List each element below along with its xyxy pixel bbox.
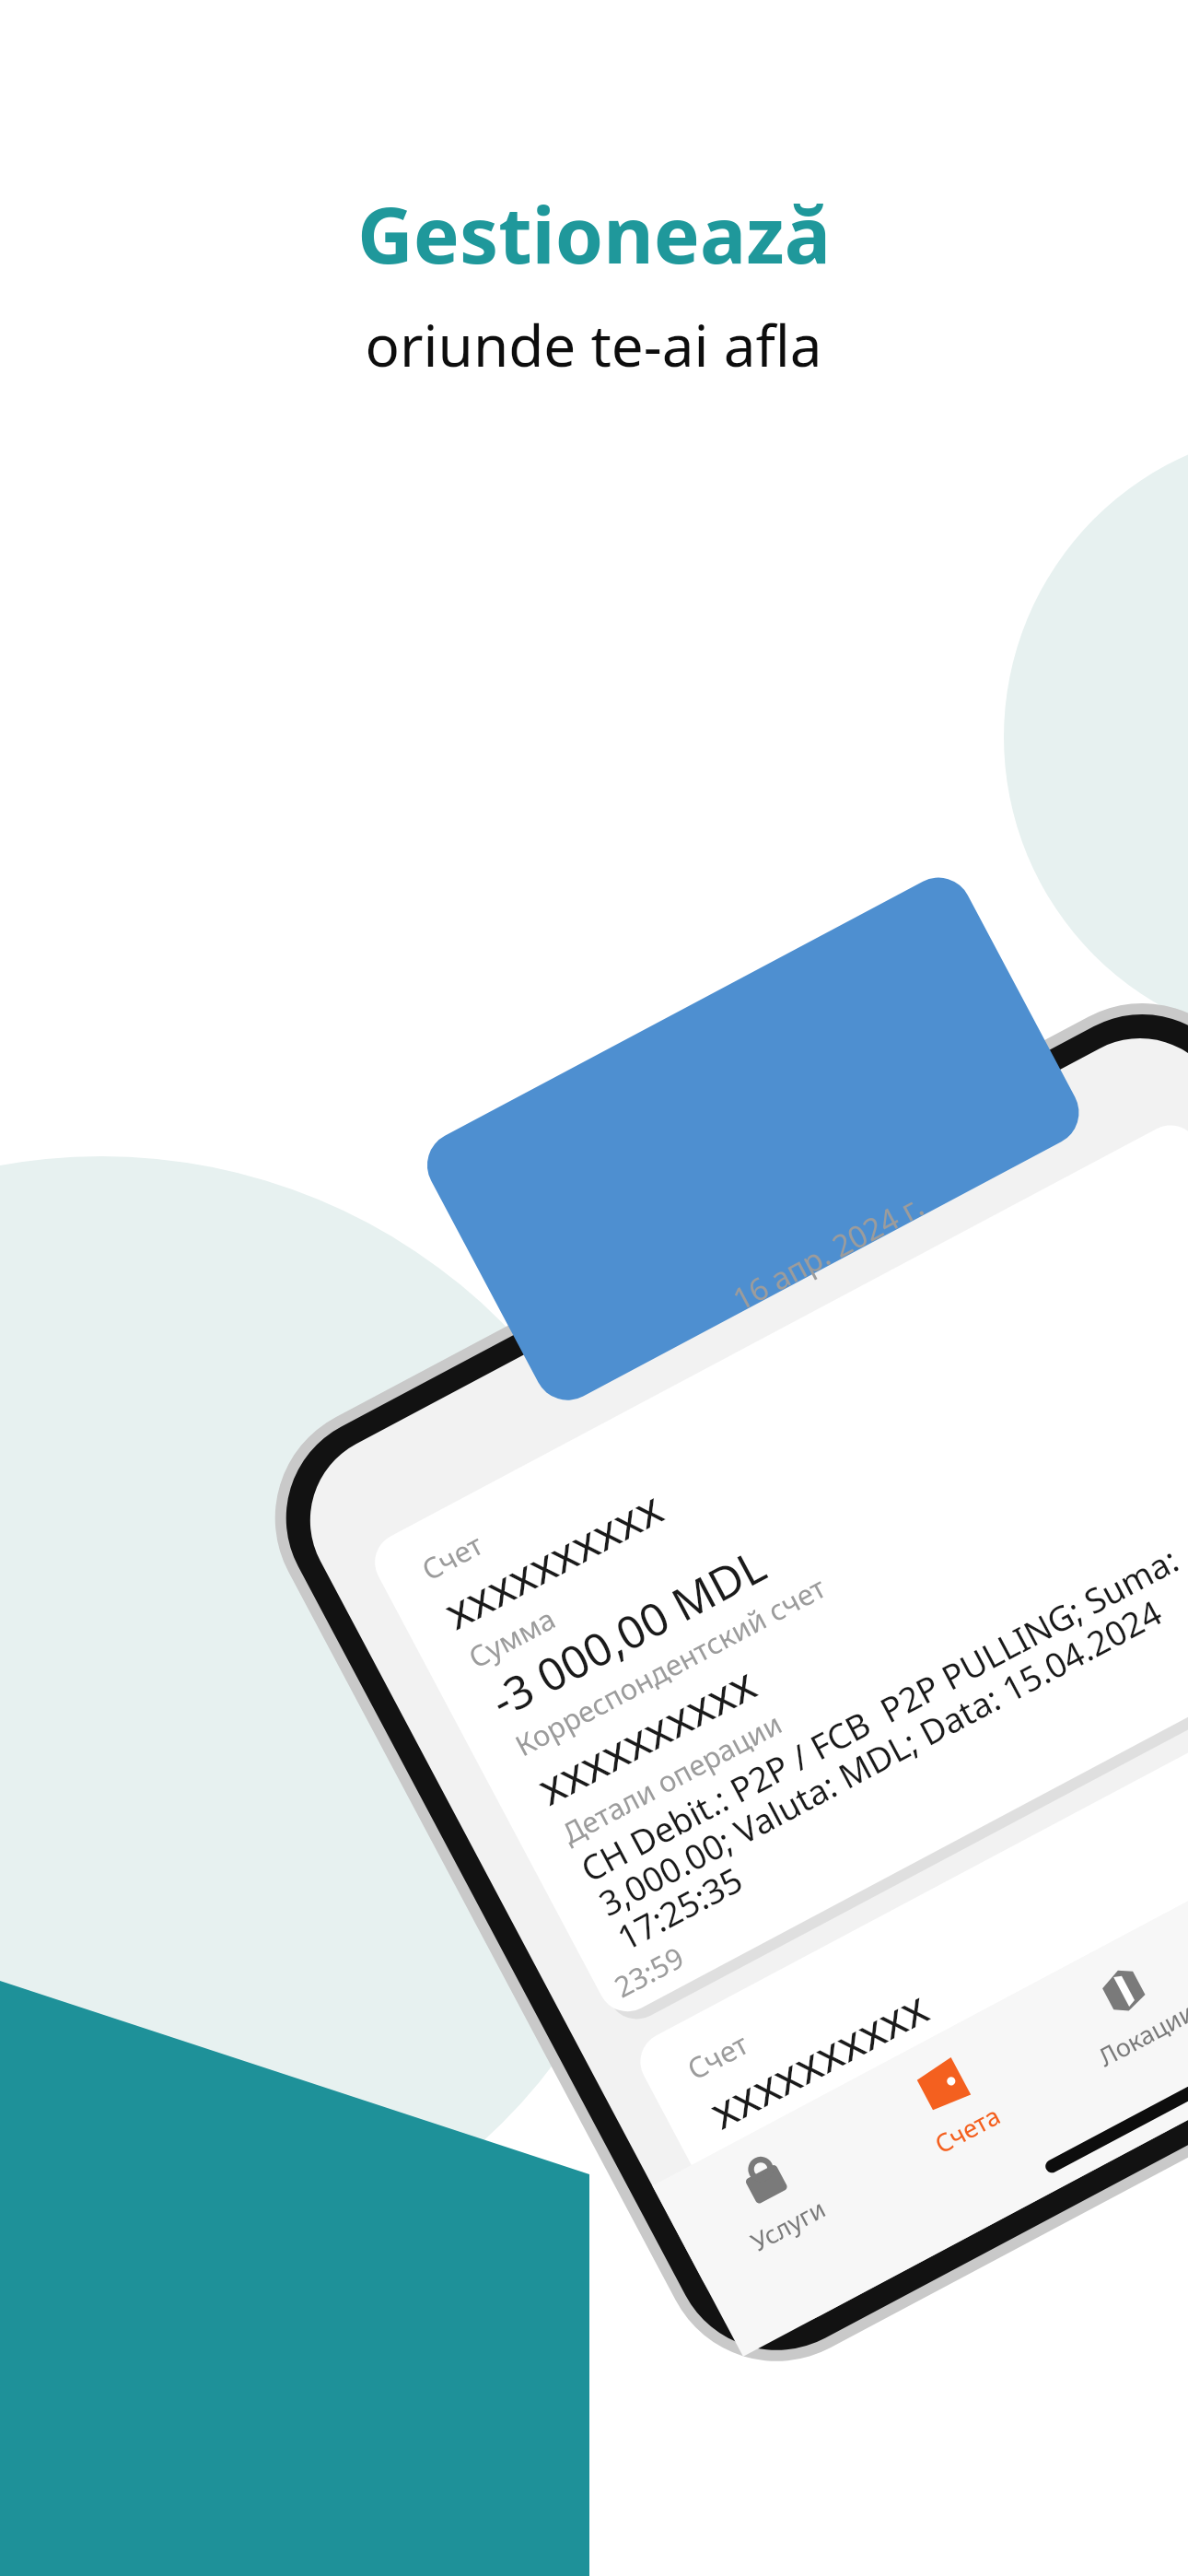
other: Gestionează oriunde te-ai afla <box>0 0 1188 2576</box>
